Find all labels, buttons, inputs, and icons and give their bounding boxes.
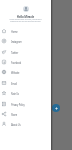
staticText: Lorem ipsum dolor sit amet, consectetur …: [1, 18, 50, 23]
button[interactable]: Facebook: [0, 57, 51, 67]
button[interactable]: Privacy Policy: [0, 99, 51, 109]
staticText: Share: [11, 113, 17, 116]
staticText: Hello Miracle: [0, 15, 51, 19]
staticText: Facebook: [11, 61, 21, 64]
staticText: Email: [11, 82, 17, 85]
staticText: Home: [11, 30, 18, 33]
button[interactable]: Share: [0, 109, 51, 119]
button[interactable]: Home: [0, 26, 51, 36]
staticText: Twitter: [11, 51, 19, 54]
button[interactable]: Rate Us: [0, 88, 51, 98]
button[interactable]: Website: [0, 67, 51, 77]
button[interactable]: Email: [0, 78, 51, 88]
button[interactable]: Twitter: [0, 47, 51, 57]
button[interactable]: Instagram: [0, 36, 51, 46]
staticText: Rate Us: [11, 92, 19, 95]
staticText: About Us: [11, 123, 21, 126]
button[interactable]: About Us: [0, 119, 51, 129]
staticText: Privacy Policy: [11, 103, 25, 106]
button[interactable]: Add: [52, 104, 60, 112]
staticText: Website: [11, 71, 20, 74]
staticText: Instagram: [11, 40, 22, 43]
